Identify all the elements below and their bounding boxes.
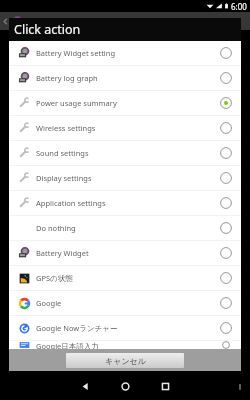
button[interactable]: Power usage summary bbox=[9, 91, 241, 115]
button[interactable]: Back bbox=[65, 373, 105, 400]
staticText: Click action bbox=[14, 21, 81, 38]
staticText: Battery Widget setting bbox=[36, 48, 116, 58]
button[interactable]: Battery Widget bbox=[9, 241, 241, 265]
staticText: GPSの状態 bbox=[36, 273, 73, 283]
staticText: Google Nowランチャー bbox=[36, 323, 118, 333]
button[interactable]: GPSの状態 bbox=[9, 266, 241, 290]
button[interactable]: Sound settings bbox=[9, 141, 241, 165]
button[interactable]: Google Nowランチャー bbox=[9, 316, 241, 340]
button[interactable]: Display settings bbox=[9, 166, 241, 190]
button[interactable]: More options bbox=[230, 377, 250, 397]
button[interactable]: Wireless settings bbox=[9, 116, 241, 140]
staticText: Battery log graph bbox=[36, 73, 98, 83]
button[interactable]: Google bbox=[9, 291, 241, 315]
button[interactable]: Battery Widget setting bbox=[9, 41, 241, 65]
staticText: Sound settings bbox=[36, 148, 89, 158]
staticText: Google bbox=[36, 298, 62, 308]
staticText: Battery Widget bbox=[36, 248, 89, 258]
button[interactable]: キャンセル bbox=[66, 353, 184, 368]
staticText: Power usage summary bbox=[36, 98, 117, 108]
button[interactable]: Recent apps bbox=[145, 373, 185, 400]
staticText: Display settings bbox=[36, 173, 92, 183]
button[interactable]: Application settings bbox=[9, 191, 241, 215]
staticText: Do nothing bbox=[36, 223, 76, 233]
staticText: 6:00 bbox=[231, 1, 247, 12]
staticText: Wireless settings bbox=[36, 123, 96, 133]
staticText: キャンセル bbox=[105, 356, 146, 366]
button[interactable]: Home bbox=[105, 373, 145, 400]
button[interactable]: Google日本語入力 bbox=[9, 341, 241, 349]
button[interactable]: Do nothing bbox=[9, 216, 241, 240]
button[interactable]: Battery log graph bbox=[9, 66, 241, 90]
staticText: Application settings bbox=[36, 198, 106, 208]
staticText: Google日本語入力 bbox=[36, 341, 99, 349]
